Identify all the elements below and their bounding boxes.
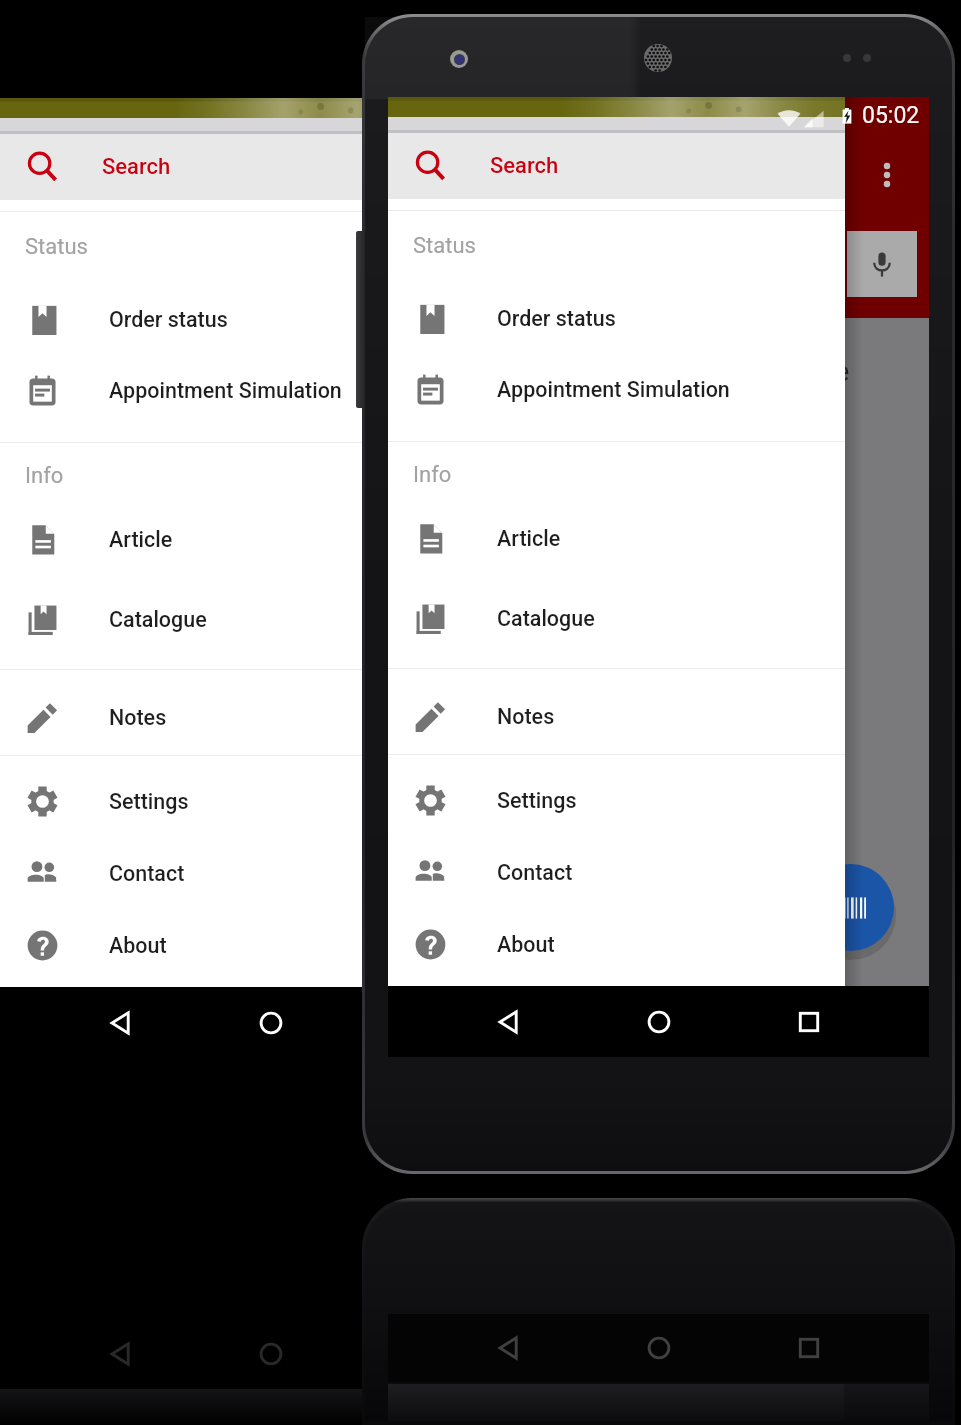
staticText: Appointment Simulation — [109, 378, 342, 403]
button[interactable]: Recents — [783, 1314, 835, 1382]
button[interactable]: More options — [860, 148, 914, 202]
button[interactable]: Order status — [0, 284, 382, 354]
staticText: Notes — [109, 705, 167, 730]
button[interactable]: Notes — [0, 682, 382, 752]
staticText: Catalogue — [109, 607, 207, 632]
button[interactable]: Voice search — [847, 231, 917, 297]
staticText: Contact — [109, 861, 185, 886]
button[interactable]: Article — [388, 503, 845, 573]
button[interactable]: Settings — [0, 766, 382, 836]
staticText: Info — [413, 462, 452, 488]
staticText: Contact — [497, 860, 573, 885]
button[interactable]: Back — [95, 1318, 147, 1389]
button[interactable]: Back — [95, 987, 147, 1058]
staticText: Settings — [497, 788, 577, 813]
staticText: ne — [820, 356, 850, 388]
staticText: Article — [497, 526, 561, 551]
button[interactable]: Search — [388, 133, 845, 199]
staticText: Notes — [497, 704, 555, 729]
staticText: Order status — [109, 307, 228, 332]
button[interactable]: Order status — [388, 283, 845, 353]
button[interactable]: Settings — [388, 765, 845, 835]
button[interactable]: Back — [483, 1314, 535, 1382]
button[interactable]: Scan barcode — [807, 864, 894, 951]
button[interactable]: Article — [0, 504, 382, 574]
staticText: Info — [25, 463, 64, 489]
button[interactable]: Home — [245, 987, 297, 1058]
button[interactable]: Home — [245, 1318, 297, 1389]
button[interactable]: Appointment Simulation — [388, 354, 845, 424]
button[interactable]: About — [0, 910, 382, 980]
staticText: Status — [25, 234, 88, 260]
staticText: Settings — [109, 789, 189, 814]
staticText: Order status — [497, 306, 616, 331]
button[interactable]: About — [388, 909, 845, 979]
staticText: Search — [102, 154, 171, 180]
button[interactable]: Recents — [783, 986, 835, 1057]
staticText: Appointment Simulation — [497, 377, 730, 402]
button[interactable]: Appointment Simulation — [0, 355, 382, 425]
button[interactable]: Notes — [388, 681, 845, 751]
staticText: 05:02 — [862, 102, 920, 129]
staticText: Search — [490, 153, 559, 179]
button[interactable]: Contact — [388, 837, 845, 907]
staticText: Status — [413, 233, 476, 259]
button[interactable]: Catalogue — [0, 584, 382, 654]
staticText: Catalogue — [497, 606, 595, 631]
staticText: About — [497, 932, 555, 957]
button[interactable]: Home — [633, 1314, 685, 1382]
button[interactable]: Back — [483, 986, 535, 1057]
button[interactable]: Search — [0, 134, 382, 200]
button[interactable]: Contact — [0, 838, 382, 908]
button[interactable]: Catalogue — [388, 583, 845, 653]
staticText: Article — [109, 527, 173, 552]
staticText: About — [109, 933, 167, 958]
button[interactable]: Home — [633, 986, 685, 1057]
